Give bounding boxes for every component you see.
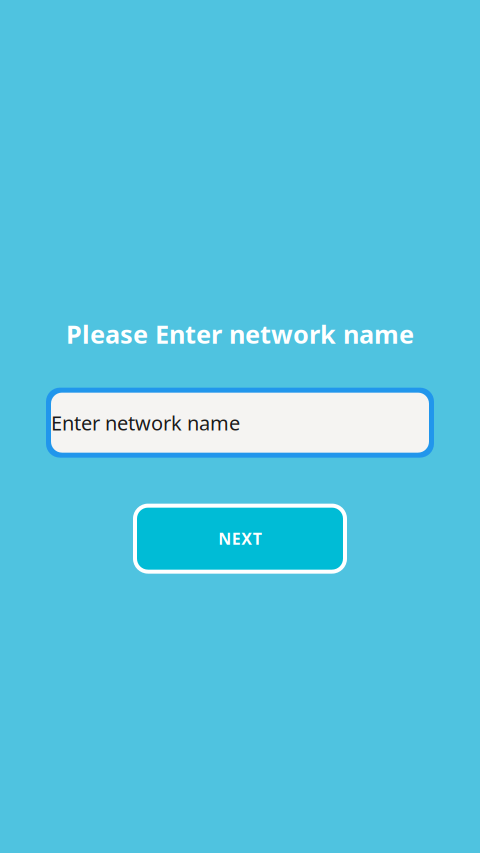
staticText: Enter network name xyxy=(51,409,240,436)
button[interactable]: NEXT xyxy=(133,504,347,574)
button[interactable]: Enter network name xyxy=(46,388,434,458)
staticText: NEXT xyxy=(218,528,262,549)
staticText: Please Enter network name xyxy=(66,317,414,351)
